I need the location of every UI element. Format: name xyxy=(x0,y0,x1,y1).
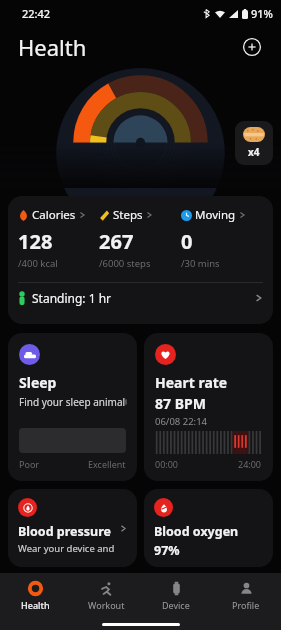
staticText: 267 xyxy=(99,228,134,255)
staticText: 0 xyxy=(181,228,193,255)
staticText: Heart rate xyxy=(155,373,228,392)
staticText: Health xyxy=(21,599,50,611)
button[interactable]: Health xyxy=(0,573,71,618)
staticText: Blood oxygen xyxy=(154,523,239,540)
button[interactable]: Profile xyxy=(211,573,281,618)
button[interactable]: Moving xyxy=(181,207,263,270)
button[interactable]: Heart rate xyxy=(144,333,273,481)
staticText: 91% xyxy=(251,6,273,21)
staticText: 87 BPM xyxy=(155,394,206,413)
button[interactable]: Blood pressure xyxy=(8,489,137,567)
staticText: Device xyxy=(162,599,190,611)
staticText: Wear your device and measure xyxy=(18,542,115,558)
staticText: 22:42 xyxy=(22,6,51,21)
button[interactable]: Blood oxygen xyxy=(144,489,273,567)
staticText: 128 xyxy=(18,228,53,255)
button[interactable]: Calories xyxy=(18,207,99,270)
staticText: Steps xyxy=(113,207,143,223)
staticText: 00:00 xyxy=(155,458,179,470)
button[interactable]: Sleep xyxy=(8,333,137,481)
staticText: Find your sleep animal xyxy=(19,395,126,409)
staticText: 97% xyxy=(154,542,180,558)
button[interactable]: Add xyxy=(239,34,265,60)
staticText: Poor xyxy=(19,458,40,470)
staticText: Workout xyxy=(88,599,125,611)
staticText: /6000 steps xyxy=(99,257,151,270)
button[interactable]: Standing: 1 hr xyxy=(18,283,263,313)
staticText: Blood pressure xyxy=(18,523,111,540)
button[interactable]: Device xyxy=(141,573,211,618)
staticText: Moving xyxy=(195,207,236,223)
staticText: /400 kcal xyxy=(18,257,58,270)
staticText: 06/08 22:14 xyxy=(155,415,208,428)
button[interactable]: Workout xyxy=(71,573,141,618)
staticText: /30 mins xyxy=(181,257,220,270)
staticText: Health xyxy=(18,32,87,62)
staticText: Sleep xyxy=(19,373,57,392)
staticText: x4 xyxy=(248,145,260,159)
staticText: Excellent xyxy=(88,458,126,470)
staticText: 24:00 xyxy=(238,458,262,470)
staticText: Standing: 1 hr xyxy=(32,290,112,306)
staticText: Profile xyxy=(232,599,260,611)
button[interactable]: Cookies x4 xyxy=(235,121,273,165)
button[interactable]: Calories xyxy=(8,196,273,324)
button[interactable]: Steps xyxy=(99,207,181,270)
staticText: Calories xyxy=(32,207,76,223)
